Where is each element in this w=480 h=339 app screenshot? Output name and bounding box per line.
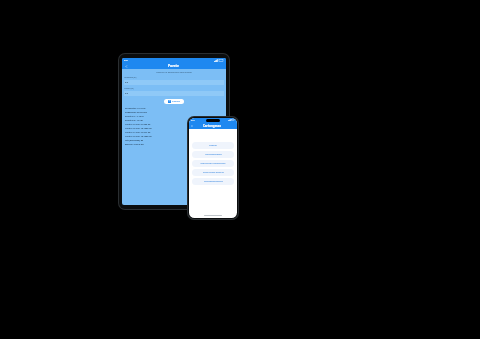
button[interactable]: STRUTTURA COMPLESSA [192, 160, 234, 167]
staticText: Bianco: 3 ml/0 kg [125, 143, 144, 146]
staticText: Inserisci le dimensioni della parete [122, 71, 226, 74]
staticText: CONTROPARETE [205, 153, 222, 156]
staticText: Pareti n.2: 14 cm [125, 119, 143, 122]
staticText: STRUTTURA COMPLESSA [200, 162, 226, 165]
staticText: Superficie: 28.50 mq [125, 111, 147, 114]
button[interactable]: 0.0 [124, 80, 224, 85]
button[interactable]: Calcola [164, 99, 184, 104]
staticText: Lastre S.9 cm: 18.1386 pz [125, 135, 152, 138]
staticText: Viti (800.0000) pz [125, 139, 144, 142]
staticText: Lastre S.3 cm: 31.250 pz [125, 123, 151, 126]
staticText: Calcola [172, 100, 180, 103]
staticText: PARETE [209, 144, 217, 147]
staticText: Altezza (m) [124, 87, 134, 90]
staticText: Perimetro: 21.10 m [125, 107, 146, 110]
staticText: Parete [168, 63, 180, 68]
button[interactable]: PARETE [192, 142, 234, 149]
staticText: Lastre S.7 cm: 47.244 pz [125, 131, 151, 134]
button[interactable]: 0.0 [124, 91, 224, 96]
staticText: Lastre S.5 cm: 18.1386 pz [125, 127, 152, 130]
button[interactable]: STRUTTURA DOPPIA [192, 169, 234, 176]
button[interactable]: CONTROSOFFITTO [192, 178, 234, 185]
button[interactable]: CONTROPARETE [192, 151, 234, 158]
staticText: Cartongesso [203, 124, 222, 128]
staticText: Larghezza (m) [124, 76, 137, 79]
staticText: CONTROSOFFITTO [204, 180, 223, 183]
staticText: 9:41 [191, 119, 195, 122]
staticText: 0.0 [125, 92, 129, 95]
button[interactable]: Back [190, 124, 194, 128]
staticText: Pareti n.1: 4.10 m [125, 115, 144, 118]
staticText: 9:41 [124, 59, 128, 62]
button[interactable]: Back [124, 64, 128, 68]
staticText: 0.0 [125, 81, 129, 84]
staticText: STRUTTURA DOPPIA [203, 171, 224, 174]
